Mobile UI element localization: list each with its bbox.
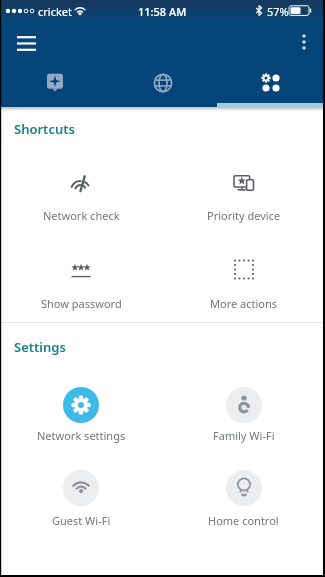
staticText: cricket xyxy=(38,4,72,19)
button[interactable]: Guest Wi-Fi xyxy=(0,470,162,528)
staticText: Priority device xyxy=(207,208,281,223)
staticText: Show password xyxy=(41,296,122,311)
button[interactable] xyxy=(291,29,317,55)
staticText: Shortcuts xyxy=(14,120,75,138)
staticText: Network settings xyxy=(37,428,126,443)
staticText: 57% xyxy=(267,4,289,19)
button[interactable]: Show password xyxy=(0,257,162,311)
button[interactable] xyxy=(12,29,40,57)
button[interactable] xyxy=(109,61,217,107)
button[interactable] xyxy=(0,61,109,107)
button[interactable]: Network check xyxy=(0,171,162,223)
button[interactable]: Priority device xyxy=(162,171,325,223)
staticText: 11:58 AM xyxy=(138,4,187,19)
staticText: Network check xyxy=(43,208,120,223)
button[interactable] xyxy=(217,61,325,107)
button[interactable]: More actions xyxy=(162,257,325,311)
staticText: Family Wi-Fi xyxy=(213,428,275,443)
staticText: Home control xyxy=(208,513,279,528)
staticText: Settings xyxy=(14,338,66,356)
button[interactable]: Home control xyxy=(162,470,325,528)
button[interactable]: Network settings xyxy=(0,387,162,443)
staticText: More actions xyxy=(210,296,278,311)
staticText: Guest Wi-Fi xyxy=(52,513,111,528)
button[interactable]: Family Wi-Fi xyxy=(162,387,325,443)
